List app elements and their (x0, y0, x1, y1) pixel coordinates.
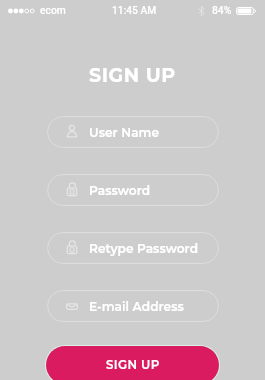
staticText: User Name (89, 125, 160, 140)
staticText: E-mail Address (89, 299, 184, 314)
staticText: ecom (40, 3, 66, 18)
staticText: 11:45 AM (112, 3, 157, 18)
staticText: SIGN UP (106, 358, 160, 372)
button[interactable]: Retype Password (47, 232, 219, 264)
staticText: Password (89, 183, 151, 198)
button[interactable]: E-mail Address (47, 290, 219, 322)
button[interactable]: Password (47, 174, 219, 206)
button[interactable]: User Name (47, 116, 219, 148)
staticText: Retype Password (89, 241, 199, 256)
button[interactable]: SIGN UP (46, 346, 219, 380)
staticText: SIGN UP (89, 64, 176, 87)
staticText: 84% (212, 3, 232, 18)
other: Bluetooth (193, 6, 203, 16)
